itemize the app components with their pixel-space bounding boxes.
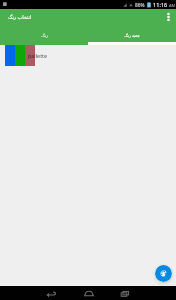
button[interactable]: Recents: [112, 286, 138, 300]
button[interactable]: رنگ: [0, 25, 88, 45]
staticText: جعبه رنگ: [124, 33, 140, 38]
staticText: pallette: [28, 52, 48, 59]
staticText: رنگ: [41, 33, 48, 38]
button[interactable]: More options: [161, 9, 176, 25]
button[interactable]: Back: [38, 286, 64, 300]
staticText: AM: [169, 3, 176, 8]
button[interactable]: Home: [76, 286, 102, 300]
staticText: 86%: [135, 2, 145, 9]
staticText: 11:16: [153, 1, 168, 9]
button[interactable]: جعبه رنگ: [88, 25, 176, 45]
staticText: انتخاب رنگ: [8, 14, 32, 21]
button[interactable]: Add color: [155, 265, 172, 282]
button[interactable]: pallette: [0, 45, 176, 66]
